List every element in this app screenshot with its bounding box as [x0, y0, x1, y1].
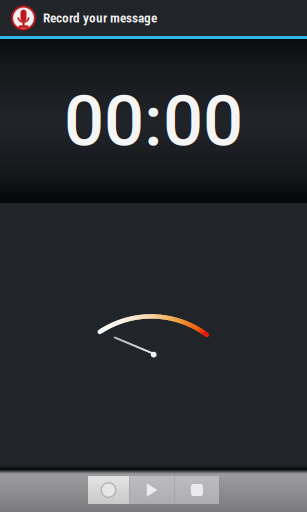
button[interactable]: Play — [130, 476, 174, 504]
button[interactable]: Record — [88, 476, 129, 504]
staticText: 00:00 — [64, 80, 243, 162]
button[interactable]: Stop — [175, 476, 219, 504]
staticText: Record your message — [43, 10, 157, 26]
